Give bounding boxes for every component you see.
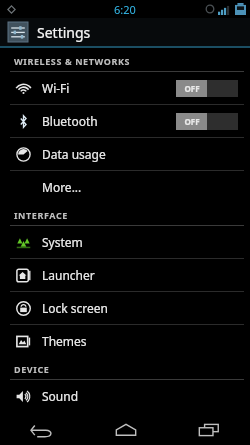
staticText: OFF: [184, 116, 200, 127]
staticText: OFF: [184, 83, 200, 94]
staticText: DEVICE: [14, 363, 50, 375]
button[interactable]: Themes: [0, 325, 250, 357]
button[interactable]: Launcher: [0, 259, 250, 291]
button[interactable]: Settings: [0, 18, 250, 46]
button[interactable]: Wi-Fi: [0, 72, 250, 104]
button[interactable]: Toggle: [176, 80, 238, 97]
staticText: Bluetooth: [42, 113, 98, 129]
staticText: Settings: [37, 23, 91, 42]
staticText: 6:20: [114, 2, 136, 17]
staticText: System: [42, 234, 83, 250]
button[interactable]: Home: [84, 415, 167, 445]
button[interactable]: Lock screen: [0, 292, 250, 324]
staticText: WIRELESS & NETWORKS: [14, 55, 131, 67]
staticText: Themes: [42, 333, 87, 349]
staticText: INTERFACE: [14, 209, 68, 221]
staticText: More...: [42, 179, 82, 195]
button[interactable]: Recent apps: [167, 415, 250, 445]
button[interactable]: Bluetooth: [0, 105, 250, 137]
staticText: Data usage: [42, 146, 106, 162]
staticText: Sound: [42, 388, 79, 404]
button[interactable]: System: [0, 226, 250, 258]
button[interactable]: Toggle: [176, 113, 238, 130]
button[interactable]: More...: [0, 171, 250, 203]
button[interactable]: Back: [0, 415, 84, 445]
staticText: Launcher: [42, 267, 95, 283]
staticText: Lock screen: [42, 300, 109, 316]
button[interactable]: Sound: [0, 380, 250, 412]
button[interactable]: Data usage: [0, 138, 250, 170]
staticText: Wi-Fi: [42, 80, 70, 96]
